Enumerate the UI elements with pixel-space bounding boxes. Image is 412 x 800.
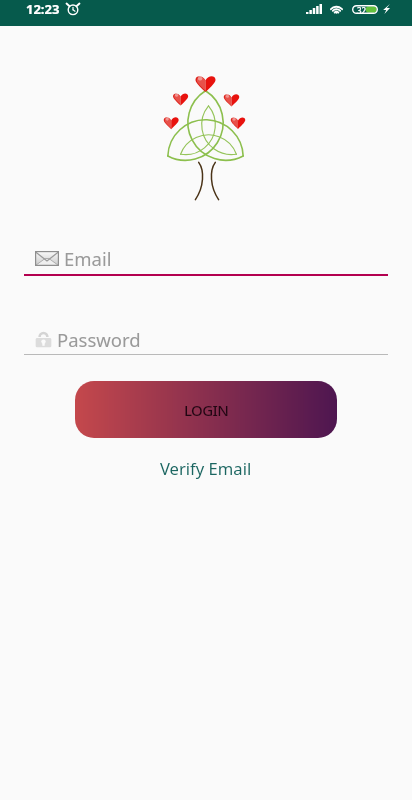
- staticText: 32: [357, 5, 367, 14]
- staticText: Verify Email: [160, 457, 252, 480]
- staticText: 12:23: [26, 0, 60, 18]
- staticText: Password: [57, 327, 141, 352]
- button[interactable]: LOGIN: [75, 381, 337, 438]
- button[interactable]: Verify Email: [150, 453, 262, 484]
- staticText: Email: [64, 246, 112, 271]
- staticText: LOGIN: [184, 400, 229, 420]
